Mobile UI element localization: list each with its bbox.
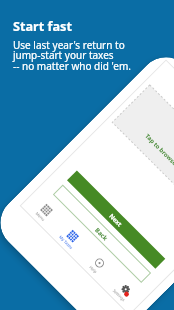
- staticText: Next: [108, 211, 124, 228]
- staticText: Back: [94, 226, 110, 242]
- staticText: Menu: [34, 211, 46, 222]
- staticText: Settings: [112, 288, 126, 303]
- button[interactable]: Next: [67, 170, 165, 269]
- staticText: Help: [88, 264, 98, 274]
- button[interactable]: Help: [79, 247, 114, 283]
- staticText: Start fast: [13, 17, 72, 34]
- button[interactable]: My Taxes: [52, 221, 88, 256]
- staticText: Use last year's return to jump-start you…: [13, 38, 131, 73]
- staticText: Tap to browse: [143, 132, 174, 168]
- button[interactable]: Back: [53, 185, 151, 283]
- button[interactable]: Tap to browse: [112, 85, 174, 199]
- staticText: My Taxes: [58, 234, 74, 250]
- button[interactable]: Menu: [26, 194, 61, 230]
- button[interactable]: Settings: [105, 274, 141, 309]
